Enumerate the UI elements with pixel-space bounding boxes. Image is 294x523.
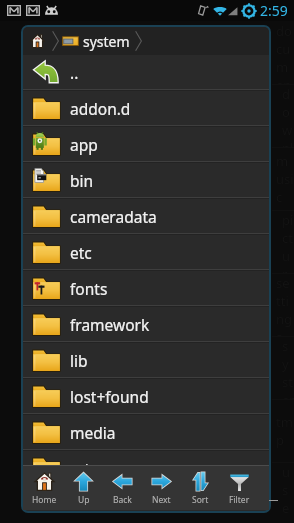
button[interactable]: Filter — [220, 466, 259, 510]
button[interactable]: Sort — [181, 466, 220, 510]
button[interactable]: Home — [23, 27, 51, 55]
button[interactable]: .. — [23, 55, 269, 89]
staticText: cameradata — [70, 206, 157, 227]
button[interactable]: Back — [103, 466, 142, 510]
staticText: etc — [70, 242, 92, 263]
staticText: Filter — [229, 494, 250, 506]
staticText: mtp — [70, 458, 100, 479]
staticText: app — [70, 134, 98, 155]
staticText: media — [70, 422, 116, 443]
staticText: Back — [113, 494, 132, 506]
button[interactable]: lib — [23, 343, 269, 377]
button[interactable]: cameradata — [23, 199, 269, 233]
button[interactable]: etc — [23, 235, 269, 269]
button[interactable]: Next — [142, 466, 181, 510]
staticText: lib — [70, 350, 88, 371]
staticText: 2:59 — [260, 1, 288, 20]
button[interactable]: Up — [64, 466, 103, 510]
staticText: .. — [70, 62, 79, 83]
button[interactable]: app — [23, 127, 269, 161]
staticText: addon.d — [70, 98, 131, 119]
staticText: lost+found — [70, 386, 149, 407]
button[interactable]: Home — [25, 466, 64, 510]
button[interactable]: lost+found — [23, 379, 269, 413]
staticText: Sort — [192, 494, 209, 506]
button[interactable]: fonts — [23, 271, 269, 305]
staticText: framework — [70, 314, 150, 335]
button[interactable]: system — [60, 27, 134, 55]
button[interactable]: addon.d — [23, 91, 269, 125]
staticText: system — [83, 32, 130, 51]
button[interactable]: bin — [23, 163, 269, 197]
button[interactable]: mtp — [23, 451, 269, 485]
staticText: Up — [78, 494, 90, 506]
staticText: fonts — [70, 278, 108, 299]
button[interactable]: media — [23, 415, 269, 449]
staticText: Home — [32, 494, 57, 506]
staticText: bin — [70, 170, 94, 191]
button[interactable]: framework — [23, 307, 269, 341]
staticText: Next — [152, 494, 171, 506]
